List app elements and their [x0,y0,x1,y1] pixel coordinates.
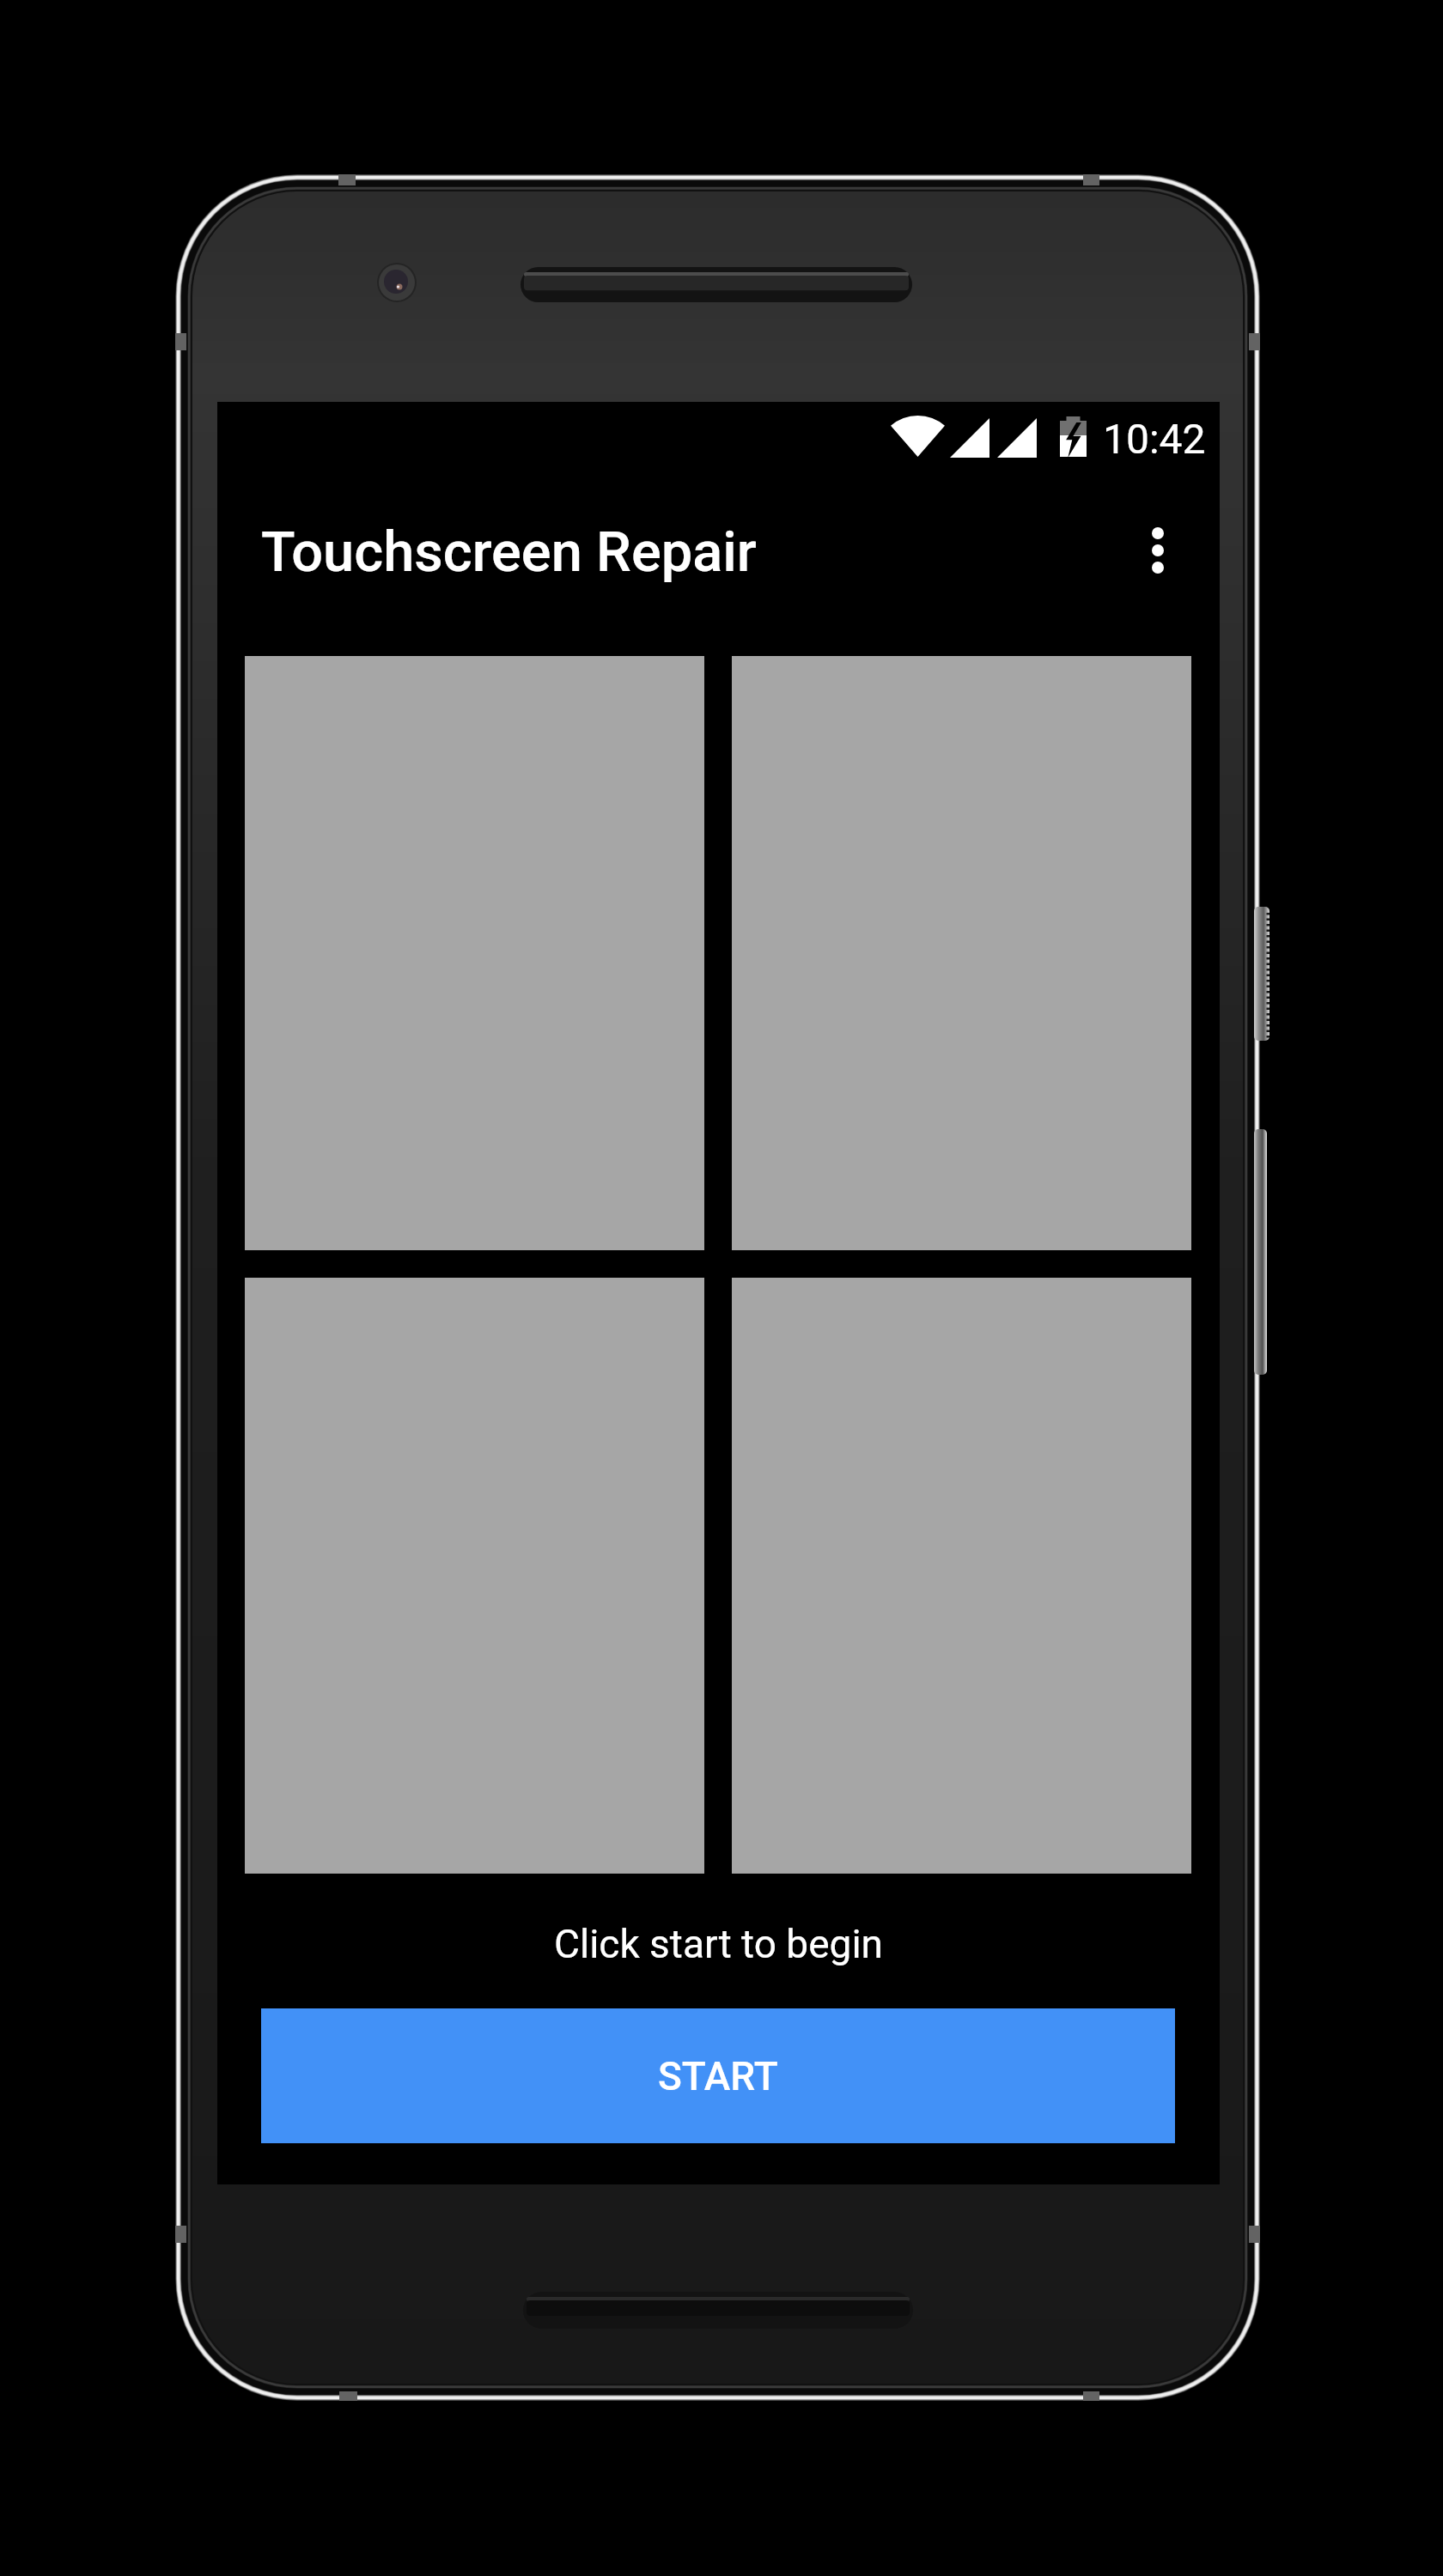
staticText: Click start to begin [554,1921,883,1967]
staticText: Touchscreen Repair [261,519,757,585]
button[interactable]: More options [1127,519,1189,581]
button[interactable]: Test area top left [245,656,704,1250]
staticText: START [658,2053,778,2099]
button[interactable]: START [261,2008,1175,2143]
button[interactable]: Test area top right [732,656,1191,1250]
staticText: 10:42 [1103,415,1206,463]
